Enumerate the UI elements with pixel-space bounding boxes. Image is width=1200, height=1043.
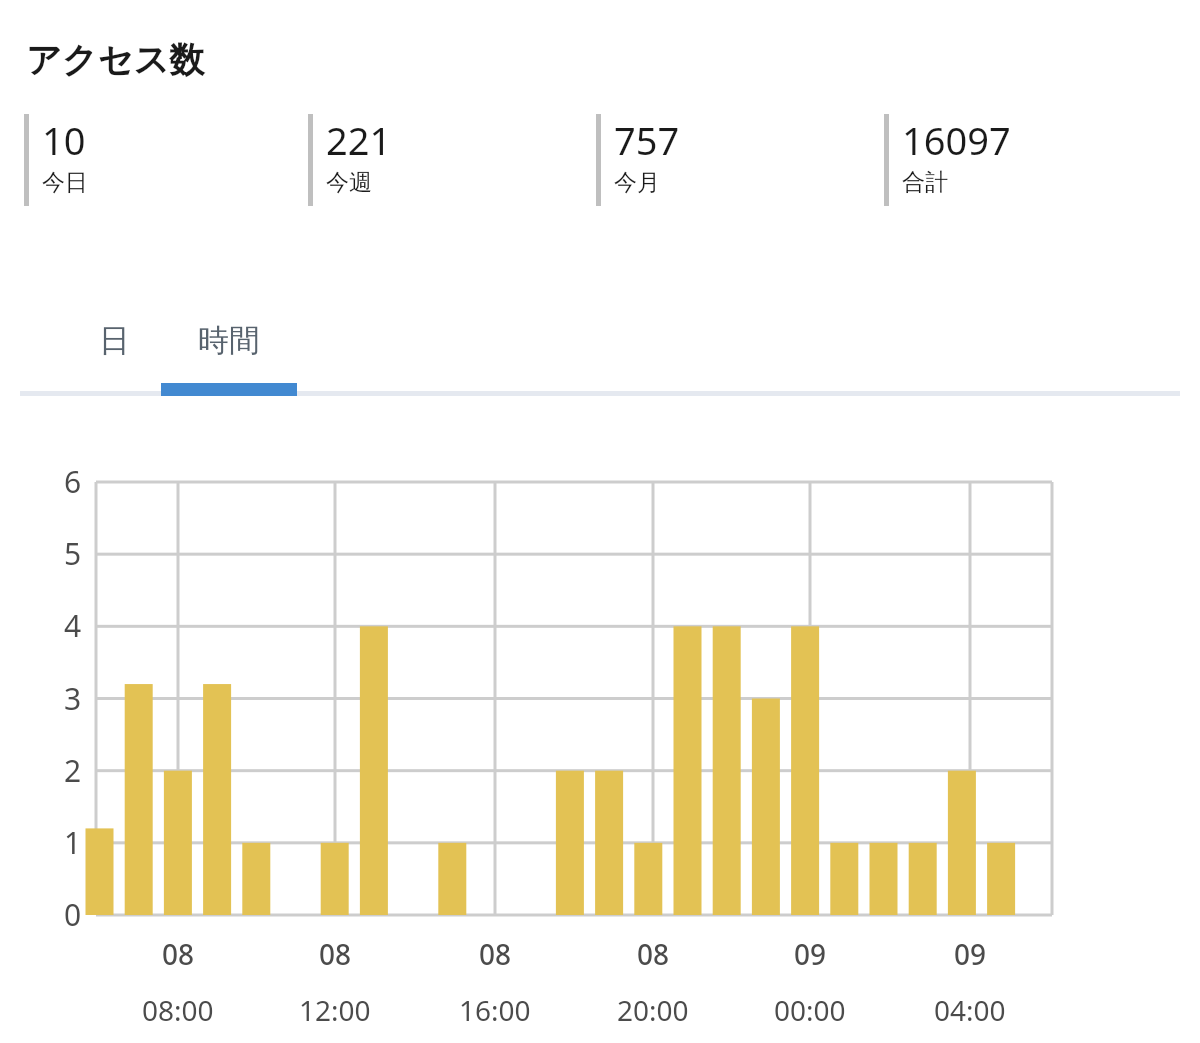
staticText: 16097 — [902, 114, 1011, 166]
button[interactable]: 757 — [596, 114, 680, 206]
staticText: 2 — [64, 750, 82, 791]
staticText: 10 — [42, 114, 86, 166]
staticText: 4 — [64, 605, 82, 646]
staticText: 04:00 — [934, 991, 1006, 1029]
staticText: 221 — [326, 114, 392, 166]
staticText: 20:00 — [617, 991, 689, 1029]
staticText: 09 — [794, 935, 827, 973]
staticText: 08 — [479, 935, 512, 973]
staticText: 3 — [64, 678, 82, 719]
staticText: 今日 — [42, 168, 88, 197]
staticText: 16:00 — [459, 991, 531, 1029]
staticText: 1 — [64, 822, 82, 863]
staticText: 日 — [99, 321, 130, 360]
staticText: 08 — [637, 935, 670, 973]
staticText: 5 — [64, 533, 82, 574]
staticText: 757 — [614, 114, 680, 166]
staticText: 今月 — [614, 168, 660, 197]
button[interactable]: 日 — [66, 292, 162, 388]
staticText: 時間 — [198, 321, 260, 360]
staticText: 08 — [162, 935, 195, 973]
staticText: 合計 — [902, 168, 948, 197]
staticText: 今週 — [326, 168, 372, 197]
staticText: 12:00 — [299, 991, 371, 1029]
staticText: アクセス数 — [26, 38, 205, 82]
button[interactable]: 10 — [24, 114, 88, 206]
staticText: 09 — [954, 935, 987, 973]
button[interactable]: 時間 — [161, 292, 297, 388]
button[interactable]: 221 — [308, 114, 392, 206]
staticText: 08:00 — [142, 991, 214, 1029]
staticText: 00:00 — [774, 991, 846, 1029]
button[interactable]: 16097 — [884, 114, 1011, 206]
staticText: 6 — [64, 461, 82, 502]
staticText: 0 — [64, 894, 82, 935]
staticText: 08 — [319, 935, 352, 973]
